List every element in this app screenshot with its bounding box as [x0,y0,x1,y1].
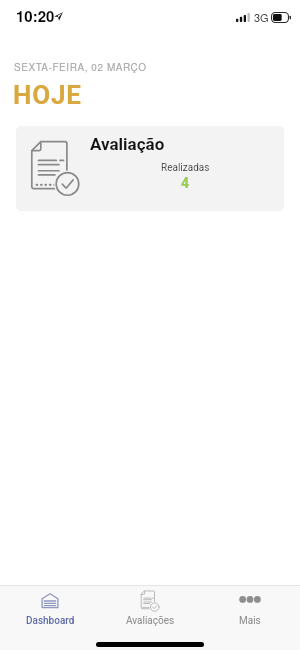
staticText: Avaliação [90,134,165,154]
button[interactable]: Avaliação [16,126,284,211]
staticText: 3G [254,9,269,25]
staticText: Avaliações [126,615,175,627]
staticText: 10:20 [16,5,55,26]
staticText: HOJE [13,80,82,110]
staticText: SEXTA-FEIRA, 02 MARÇO [14,60,147,74]
button[interactable]: Mais [200,586,300,630]
button[interactable]: Avaliações [100,586,200,630]
staticText: Realizadas [161,162,210,174]
button[interactable]: Dashboard [0,586,100,630]
staticText: 4 [181,175,190,191]
staticText: Mais [239,615,261,627]
staticText: Dashboard [26,615,75,627]
